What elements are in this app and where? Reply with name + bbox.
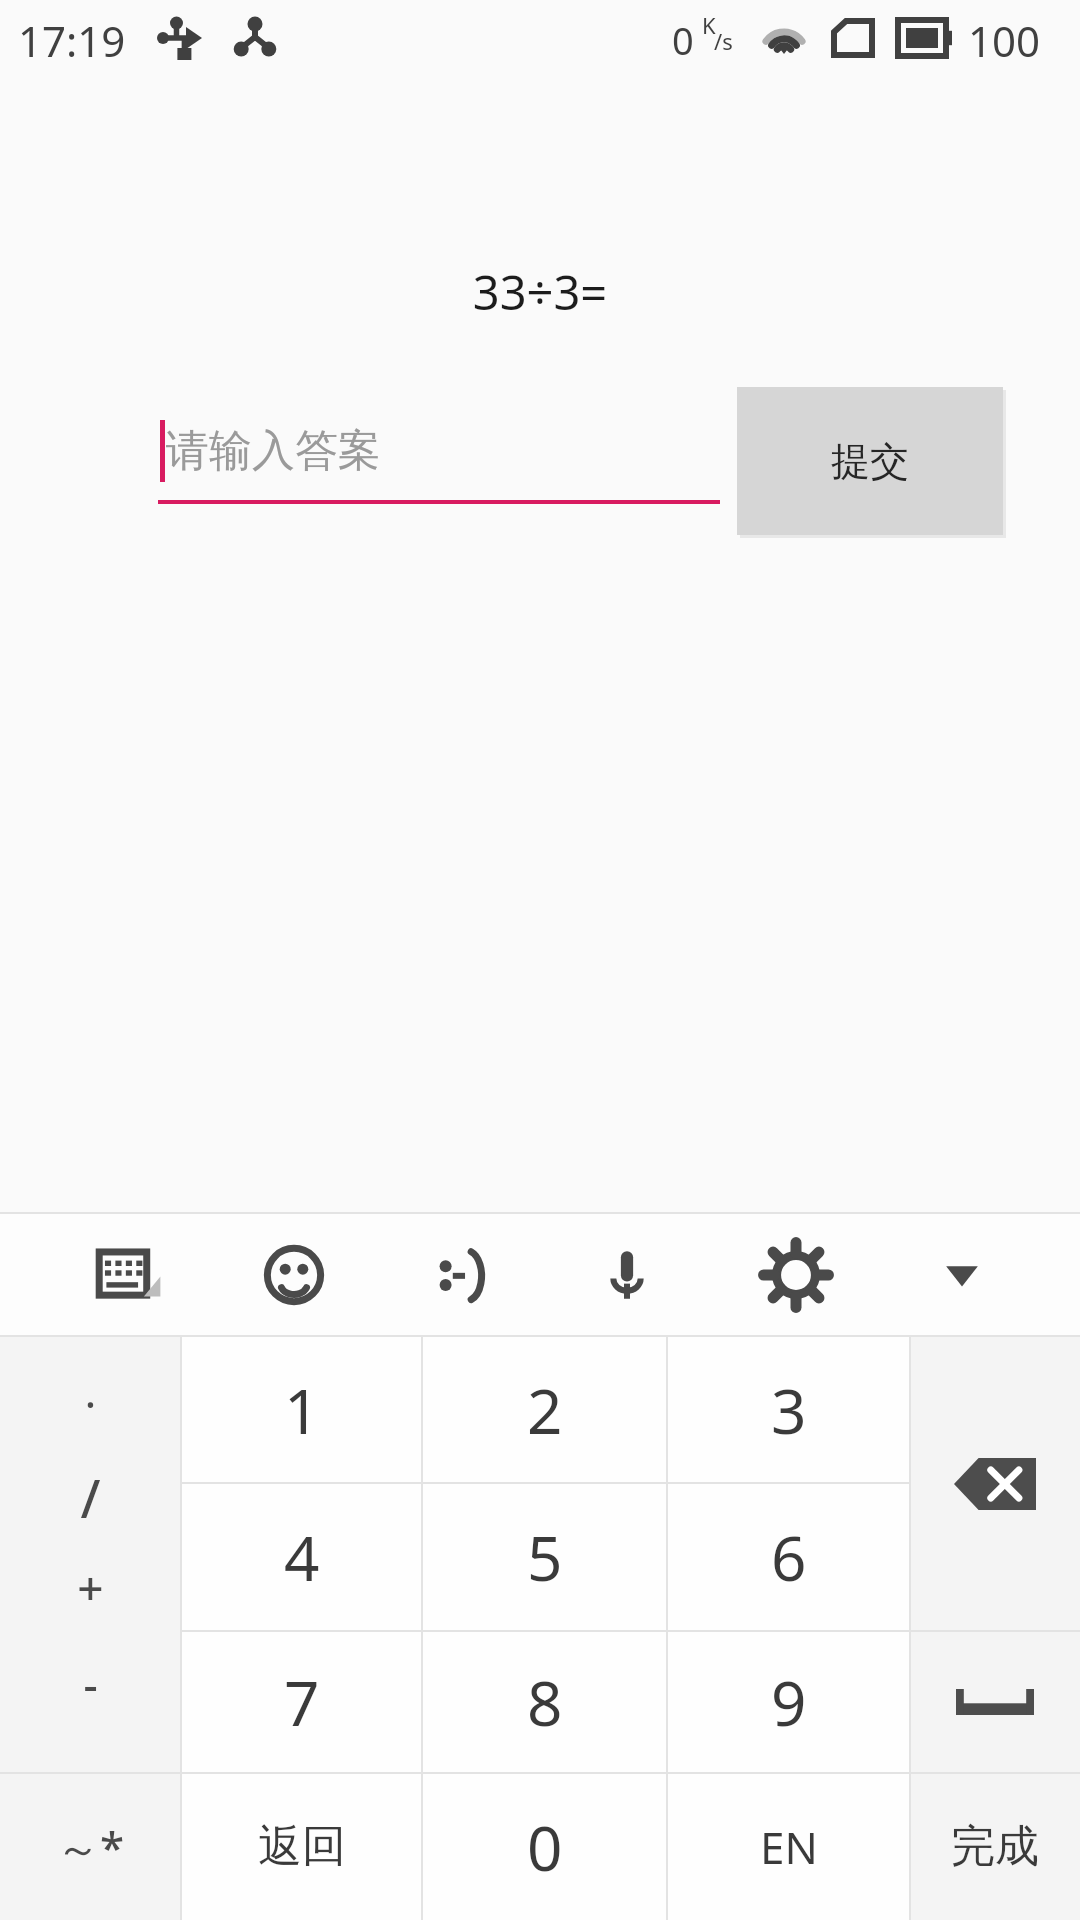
staticText: / — [0, 1462, 181, 1533]
button[interactable]: 提交 — [737, 387, 1003, 535]
button[interactable]: 完成 — [910, 1773, 1080, 1920]
button[interactable]: Settings — [738, 1214, 854, 1336]
button[interactable]: 2 — [422, 1336, 667, 1483]
button[interactable]: Emoji — [236, 1214, 352, 1336]
button[interactable]: 6 — [667, 1483, 910, 1631]
button[interactable]: 9 — [667, 1631, 910, 1773]
staticText: 提交 — [831, 437, 909, 486]
button[interactable]: Switch keyboard — [70, 1214, 186, 1336]
button[interactable]: 7 — [181, 1631, 422, 1773]
staticText: - — [0, 1654, 181, 1714]
staticText: 2 — [527, 1368, 563, 1452]
button[interactable]: Backspace — [910, 1336, 1080, 1631]
staticText: 0 — [672, 14, 694, 66]
staticText: 8 — [527, 1660, 563, 1744]
staticText: 7 — [284, 1660, 320, 1744]
staticText: 100 — [968, 12, 1041, 69]
staticText: 6 — [771, 1515, 807, 1599]
button[interactable]: Hide keyboard — [904, 1214, 1020, 1336]
button[interactable]: 0 — [422, 1773, 667, 1920]
staticText: 请输入答案 — [166, 424, 381, 478]
staticText: 完成 — [951, 1819, 1039, 1874]
staticText: 5 — [527, 1515, 563, 1599]
button[interactable]: · — [0, 1336, 181, 1773]
staticText: EN — [760, 1817, 818, 1877]
button[interactable]: 4 — [181, 1483, 422, 1631]
button[interactable]: 3 — [667, 1336, 910, 1483]
staticText: 返回 — [258, 1819, 346, 1874]
staticText: · — [0, 1376, 181, 1430]
button[interactable]: ～* — [0, 1773, 181, 1920]
staticText: ～* — [56, 1817, 125, 1877]
staticText: 33÷3= — [0, 260, 1080, 324]
staticText: /s — [714, 26, 733, 56]
button[interactable]: 8 — [422, 1631, 667, 1773]
button[interactable]: Text emoticons — [402, 1214, 518, 1336]
button[interactable]: 请输入答案 — [158, 372, 720, 504]
button[interactable]: 5 — [422, 1483, 667, 1631]
staticText: K — [702, 10, 716, 40]
button[interactable]: 1 — [181, 1336, 422, 1483]
staticText: 9 — [771, 1660, 807, 1744]
button[interactable]: EN — [667, 1773, 910, 1920]
staticText: 17:19 — [18, 12, 126, 69]
staticText: + — [0, 1556, 181, 1619]
staticText: 1 — [284, 1368, 320, 1452]
staticText: 3 — [771, 1368, 807, 1452]
staticText: 4 — [284, 1515, 320, 1599]
staticText: 0 — [527, 1805, 563, 1889]
button[interactable]: Voice input — [569, 1214, 685, 1336]
button[interactable]: Space — [910, 1631, 1080, 1773]
button[interactable]: 返回 — [181, 1773, 422, 1920]
